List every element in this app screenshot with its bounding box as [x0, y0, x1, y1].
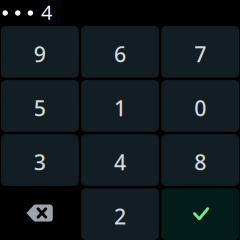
button[interactable]: Confirm — [161, 188, 239, 240]
staticText: 6 — [114, 40, 126, 68]
staticText: 4 — [114, 148, 126, 176]
button[interactable]: 8 — [161, 134, 239, 186]
staticText: 1 — [114, 94, 126, 122]
button[interactable]: 3 — [1, 134, 79, 186]
button[interactable]: 5 — [1, 80, 79, 132]
staticText: 4 — [41, 0, 52, 25]
button[interactable]: Delete — [1, 188, 79, 240]
button[interactable]: 2 — [81, 188, 159, 240]
button[interactable]: 6 — [81, 26, 159, 78]
button[interactable]: 7 — [161, 26, 239, 78]
button[interactable]: 4 — [81, 134, 159, 186]
staticText: 9 — [34, 40, 46, 68]
staticText: 3 — [34, 148, 46, 176]
staticText: 5 — [34, 94, 46, 122]
staticText: 8 — [194, 148, 206, 176]
button[interactable]: 0 — [161, 80, 239, 132]
button[interactable]: 9 — [1, 26, 79, 78]
staticText: 0 — [194, 94, 206, 122]
button[interactable]: 1 — [81, 80, 159, 132]
staticText: 7 — [194, 40, 206, 68]
staticText: 2 — [114, 202, 126, 230]
